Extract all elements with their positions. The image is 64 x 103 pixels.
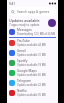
staticText: Netflix: [17, 89, 27, 93]
button[interactable]: Telegram: [7, 78, 58, 88]
button[interactable]: Google Maps: [7, 68, 58, 78]
staticText: Messages: [17, 28, 32, 32]
button[interactable]: Spotify: [7, 58, 58, 68]
staticText: Update available 55 MB: [17, 93, 46, 97]
staticText: Update available 22 MB: [17, 83, 46, 87]
button[interactable]: YouTube: [7, 38, 58, 48]
staticText: Update available 44 MB: [17, 43, 46, 47]
staticText: YouTube: [17, 39, 30, 43]
button[interactable]: Account: [48, 19, 56, 27]
button[interactable]: Netflix: [7, 88, 58, 98]
staticText: 9:41: [9, 2, 15, 6]
staticText: Spotify: [17, 59, 28, 63]
staticText: Gmail: [17, 49, 26, 53]
staticText: Google Maps: [17, 69, 37, 73]
staticText: Updates available: [9, 18, 40, 23]
staticText: Update available 18 MB: [17, 63, 46, 67]
staticText: Search apps & games: [17, 10, 50, 14]
button[interactable]: Gmail: [7, 48, 58, 58]
staticText: Update available 31 MB: [17, 53, 46, 57]
button[interactable]: Messages: [7, 27, 58, 38]
button[interactable]: Search apps & games: [9, 7, 56, 16]
staticText: Update available 65 MB: [17, 73, 46, 77]
staticText: Downloading 12.5 MB of 24 MB: [17, 32, 56, 36]
staticText: 7 apps ready to update: [9, 23, 40, 27]
staticText: Telegram: [17, 79, 31, 83]
